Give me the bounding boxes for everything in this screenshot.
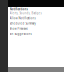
staticText: Alerts, Sounds, Badges [10,11,42,15]
staticText: Siri Suggestions [10,32,32,36]
staticText: Notifications [10,7,28,11]
staticText: Scheduled Summary [10,22,36,25]
staticText: Allow Notifications [10,16,36,20]
staticText: Show Previews [10,27,28,30]
